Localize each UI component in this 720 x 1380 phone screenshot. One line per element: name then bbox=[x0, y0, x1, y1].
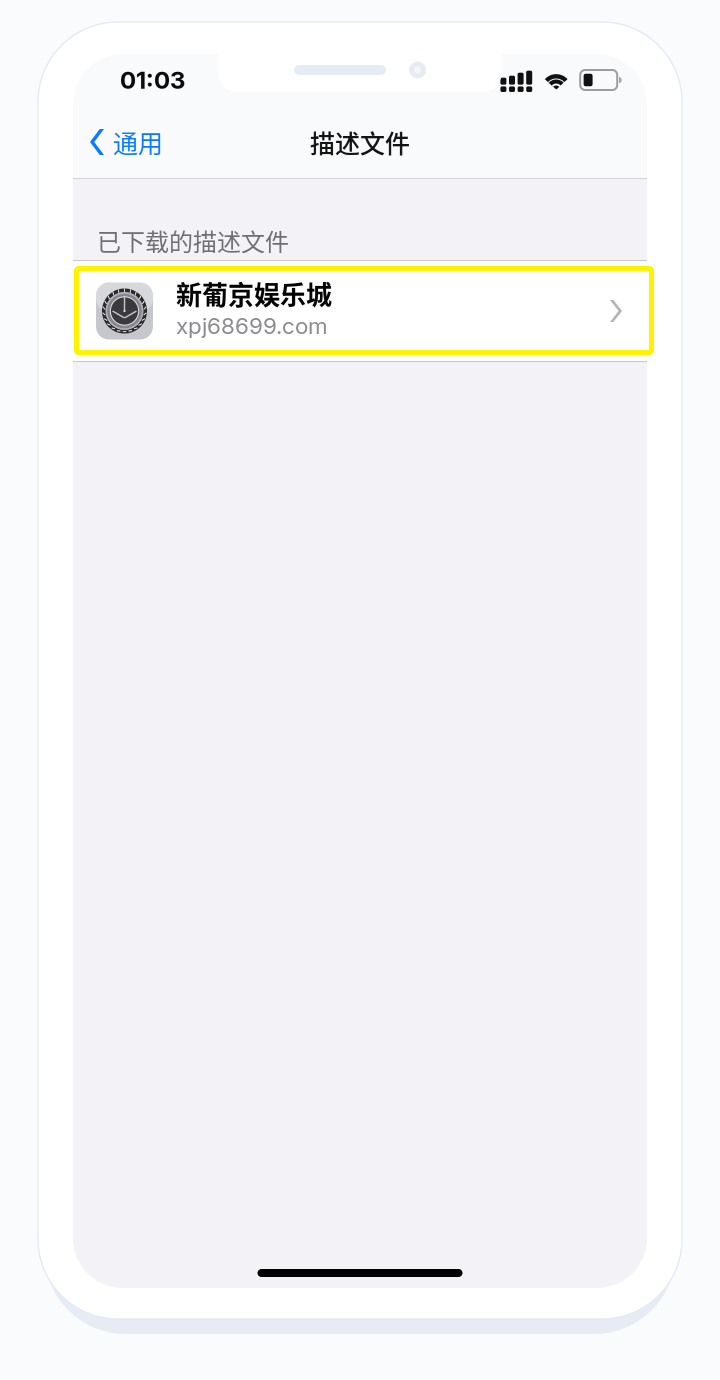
staticText: 通用 bbox=[113, 124, 163, 160]
button[interactable]: 新葡京娱乐城 bbox=[73, 261, 647, 361]
staticText: 新葡京娱乐城 bbox=[176, 275, 332, 312]
staticText: xpj68699.com bbox=[176, 312, 328, 339]
staticText: 01:03 bbox=[120, 65, 185, 94]
button[interactable]: 通用 bbox=[73, 106, 175, 178]
staticText: 已下载的描述文件 bbox=[97, 223, 289, 258]
staticText: 描述文件 bbox=[310, 124, 410, 160]
